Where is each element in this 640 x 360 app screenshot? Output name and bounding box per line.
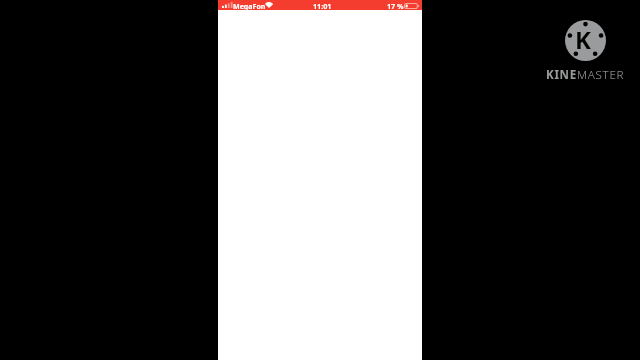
staticText: MASTER [577,67,625,83]
staticText: K [575,23,591,56]
other: KineMaster watermark [530,0,640,100]
button[interactable]: Battery 17 percent [385,0,420,10]
staticText: 17 % [387,1,404,11]
button[interactable]: Wi-Fi connected [264,0,273,10]
button[interactable]: Cellular signal strength [222,0,232,10]
button[interactable]: MegaFon [233,1,266,11]
staticText: KINE [546,67,577,83]
button[interactable]: 11:01 [313,1,332,11]
